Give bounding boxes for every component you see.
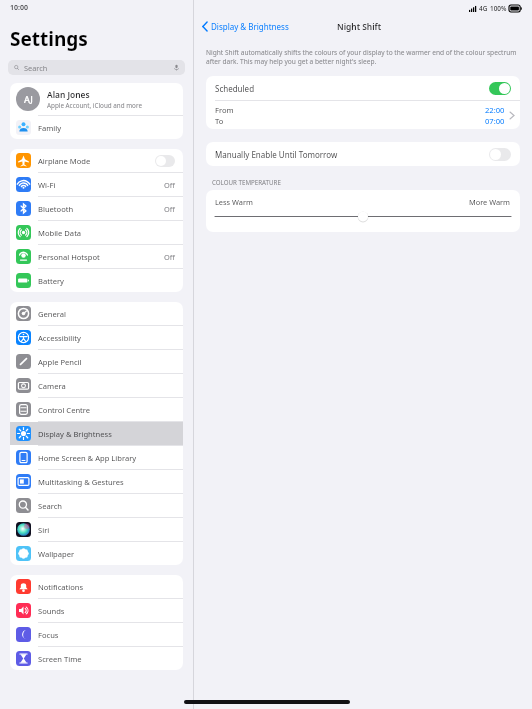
staticText: 10:00	[10, 3, 28, 13]
button[interactable]: Search	[10, 494, 183, 517]
staticText: 07:00	[485, 116, 505, 126]
staticText: COLOUR TEMPERATURE	[212, 178, 281, 186]
staticText: Search	[24, 63, 173, 73]
staticText: Search	[38, 501, 175, 511]
button[interactable]: Battery	[10, 269, 183, 292]
staticText: Apple Pencil	[38, 357, 175, 367]
staticText: Sounds	[38, 606, 175, 616]
button[interactable]: Control Centre	[10, 398, 183, 421]
button[interactable]: Wi-Fi	[10, 173, 183, 196]
staticText: More Warm	[469, 197, 511, 207]
button[interactable]: Multitasking & Gestures	[10, 470, 183, 493]
button[interactable]: Manually Enable Until Tomorrow	[206, 142, 520, 166]
staticText: Personal Hotspot	[38, 252, 164, 262]
button[interactable]: Siri	[10, 518, 183, 541]
button[interactable]: Display & Brightness	[194, 18, 295, 35]
staticText: Notifications	[38, 582, 175, 592]
button[interactable]: Personal Hotspot	[10, 245, 183, 268]
staticText: Accessibility	[38, 333, 175, 343]
button[interactable]: Wallpaper	[10, 542, 183, 565]
staticText: Wi-Fi	[38, 180, 164, 190]
staticText: AJ	[24, 93, 33, 105]
staticText: From	[215, 105, 234, 115]
staticText: Family	[38, 123, 175, 133]
staticText: Wallpaper	[38, 549, 175, 559]
staticText: Multitasking & Gestures	[38, 477, 175, 487]
staticText: Focus	[38, 630, 175, 640]
staticText: Less Warm	[215, 197, 253, 207]
staticText: Settings	[10, 26, 88, 52]
staticText: 100%	[490, 4, 507, 13]
button[interactable]: Accessibility	[10, 326, 183, 349]
staticText: Off	[164, 180, 175, 190]
staticText: Mobile Data	[38, 228, 175, 238]
staticText: Off	[164, 252, 175, 262]
button[interactable]: Toggle off	[489, 148, 511, 161]
staticText: Camera	[38, 381, 175, 391]
button[interactable]: Airplane Mode	[10, 149, 183, 172]
staticText: Scheduled	[215, 83, 489, 94]
staticText: Control Centre	[38, 405, 175, 415]
button[interactable]: Search	[8, 60, 185, 75]
button[interactable]: Toggle on	[489, 82, 511, 95]
button[interactable]: Family	[10, 116, 183, 139]
staticText: Home Screen & App Library	[38, 453, 175, 463]
staticText: 4G	[479, 4, 488, 13]
button[interactable]: Camera	[10, 374, 183, 397]
staticText: Night Shift automatically shifts the col…	[206, 48, 520, 66]
staticText: Screen Time	[38, 654, 175, 664]
button[interactable]: Home Screen & App Library	[10, 446, 183, 469]
button[interactable]: Colour temperature slider	[215, 211, 511, 222]
button[interactable]: Mobile Data	[10, 221, 183, 244]
button[interactable]: General	[10, 302, 183, 325]
button[interactable]: Focus	[10, 623, 183, 646]
staticText: Siri	[38, 525, 175, 535]
button[interactable]: Toggle off	[155, 155, 175, 167]
staticText: Alan Jones	[47, 89, 90, 100]
button[interactable]: Display & Brightness	[10, 422, 183, 445]
button[interactable]: Apple Pencil	[10, 350, 183, 373]
button[interactable]: Scheduled	[206, 76, 520, 100]
button[interactable]: Sounds	[10, 599, 183, 622]
staticText: General	[38, 309, 175, 319]
staticText: Manually Enable Until Tomorrow	[215, 149, 489, 160]
staticText: Apple Account, iCloud and more	[47, 101, 142, 110]
staticText: Bluetooth	[38, 204, 164, 214]
staticText: Display & Brightness	[211, 21, 289, 32]
staticText: Off	[164, 204, 175, 214]
staticText: 22:00	[485, 105, 505, 115]
button[interactable]: Bluetooth	[10, 197, 183, 220]
staticText: To	[215, 116, 224, 126]
button[interactable]: Notifications	[10, 575, 183, 598]
staticText: Night Shift	[337, 21, 382, 32]
button[interactable]: Screen Time	[10, 647, 183, 670]
button[interactable]: From	[206, 101, 520, 129]
staticText: Airplane Mode	[38, 156, 155, 166]
staticText: Battery	[38, 276, 175, 286]
staticText: Display & Brightness	[38, 429, 175, 439]
button[interactable]: AJ	[10, 83, 183, 115]
